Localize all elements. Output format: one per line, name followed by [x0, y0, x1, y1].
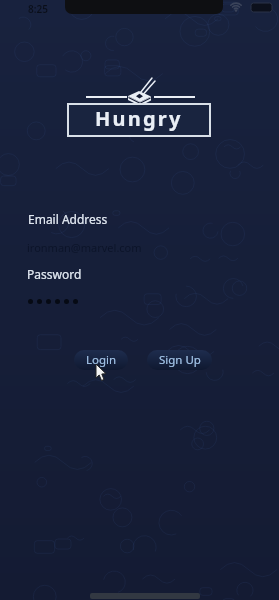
staticText: Password — [27, 266, 82, 282]
button[interactable]: Login — [74, 350, 128, 370]
button[interactable] — [28, 299, 78, 304]
staticText: Email Address — [28, 211, 108, 227]
button[interactable]: Sign Up — [147, 350, 212, 370]
staticText: ironman@marvel.com — [27, 240, 142, 255]
staticText: Login — [86, 352, 117, 368]
staticText: 8:25 — [28, 2, 48, 16]
button[interactable]: ironman@marvel.com — [27, 240, 207, 257]
staticText: Hungry — [95, 105, 183, 132]
staticText: Sign Up — [159, 352, 201, 368]
